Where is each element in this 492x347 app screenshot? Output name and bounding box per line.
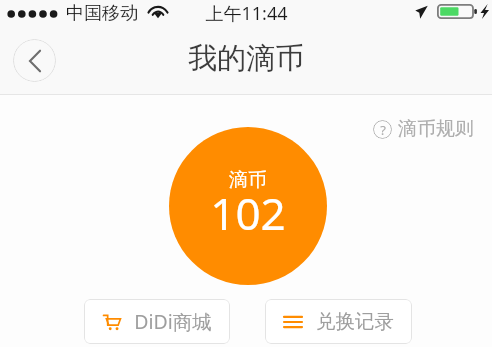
button[interactable]: Back (13, 39, 56, 82)
staticText: 中国移动 (66, 2, 138, 25)
staticText: 我的滴币 (188, 40, 304, 77)
button[interactable]: 兑换记录 (265, 299, 412, 344)
staticText: 102 (210, 183, 286, 243)
staticText: 兑换记录 (316, 309, 394, 334)
staticText: DiDi商城 (134, 308, 212, 335)
button[interactable]: DiDi商城 (84, 299, 230, 344)
staticText: ? (380, 121, 386, 139)
staticText: 滴币 (229, 168, 267, 192)
staticText: 上午11:44 (205, 1, 288, 26)
button[interactable]: ? (373, 117, 474, 141)
staticText: 滴币规则 (398, 117, 474, 141)
